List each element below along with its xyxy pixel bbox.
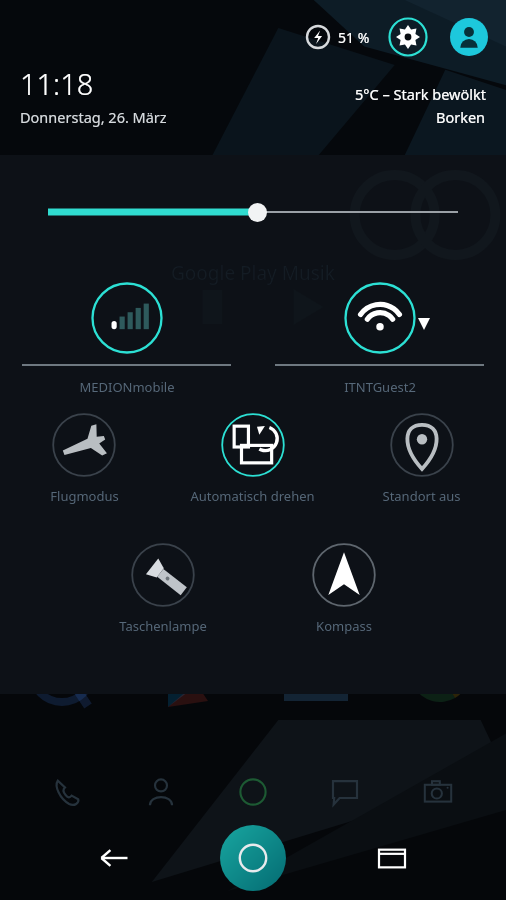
button[interactable]: Taschenlampe xyxy=(82,543,244,635)
staticText: 11:18 xyxy=(20,64,94,103)
staticText: MEDIONmobile xyxy=(79,378,175,396)
staticText: 5°C – Stark bewölkt xyxy=(355,84,486,104)
button[interactable]: Contacts xyxy=(137,768,185,816)
button[interactable]: Camera xyxy=(414,768,462,816)
button[interactable]: Phone xyxy=(44,768,92,816)
staticText: Standort aus xyxy=(382,487,461,505)
button[interactable]: User profile xyxy=(450,18,488,56)
staticText: Borken xyxy=(436,107,486,127)
button[interactable]: Battery charging xyxy=(306,25,330,49)
button[interactable]: Messages xyxy=(321,768,369,816)
button[interactable]: Back xyxy=(88,832,140,884)
staticText: ITNTGuest2 xyxy=(344,378,416,396)
staticText: Donnerstag, 26. März xyxy=(20,107,167,127)
button[interactable]: MEDIONmobile xyxy=(0,278,253,396)
button[interactable]: Settings xyxy=(388,17,428,57)
staticText: Flugmodus xyxy=(50,487,119,505)
button[interactable]: Flugmodus xyxy=(0,413,168,505)
button[interactable]: Standort aus xyxy=(337,413,506,505)
button[interactable]: ITNTGuest2 xyxy=(253,278,506,396)
staticText: Kompass xyxy=(316,617,372,635)
staticText: Taschenlampe xyxy=(119,617,207,635)
button[interactable]: Automatisch drehen xyxy=(168,413,337,505)
button[interactable]: Brightness xyxy=(247,202,268,223)
button[interactable]: Recents xyxy=(366,832,418,884)
staticText: 51 % xyxy=(338,28,370,47)
staticText: Automatisch drehen xyxy=(190,487,315,505)
button[interactable]: Kompass xyxy=(263,543,425,635)
button[interactable]: App drawer xyxy=(229,768,277,816)
button[interactable]: Home xyxy=(220,825,286,891)
staticText: Google Play Musik xyxy=(171,260,335,286)
